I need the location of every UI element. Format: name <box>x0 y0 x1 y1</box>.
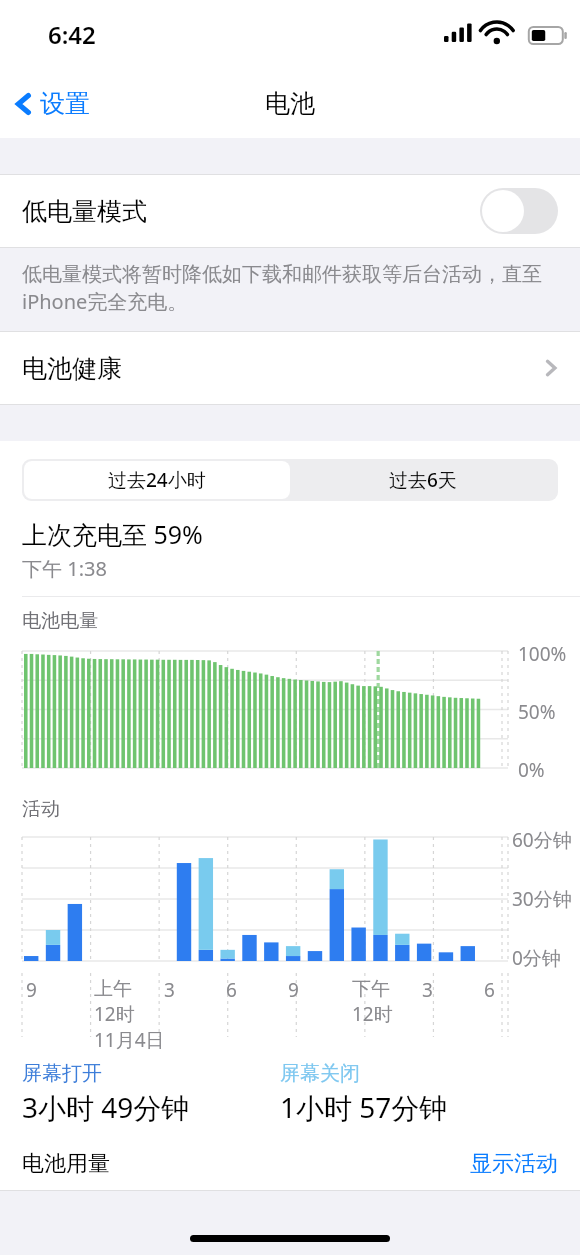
staticText: 电池用量 <box>22 1150 110 1178</box>
button[interactable]: 低电量模式开关 <box>480 188 558 234</box>
staticText: 活动 <box>22 797 60 821</box>
staticText: 0% <box>518 757 545 783</box>
staticText: 上次充电至 59% <box>22 517 203 551</box>
staticText: 3小时 49分钟 <box>22 1088 190 1126</box>
button[interactable]: 设置 <box>0 82 100 125</box>
staticText: 50% <box>518 699 556 725</box>
staticText: 6:42 <box>48 18 96 51</box>
button[interactable]: 过去6天 <box>290 461 556 499</box>
button[interactable]: 过去24小时 <box>24 461 290 499</box>
staticText: 设置 <box>40 88 90 119</box>
button[interactable]: 显示活动 <box>470 1150 558 1178</box>
staticText: 11月4日 <box>94 1027 165 1053</box>
staticText: 电池 <box>265 88 315 119</box>
staticText: 屏幕关闭 <box>280 1061 360 1086</box>
staticText: 显示活动 <box>470 1150 558 1178</box>
staticText: 1小时 57分钟 <box>280 1088 448 1126</box>
staticText: 低电量模式 <box>22 196 147 227</box>
staticText: 60分钟 <box>512 827 572 853</box>
staticText: 6 <box>484 977 495 1003</box>
staticText: 30分钟 <box>512 886 572 912</box>
button[interactable]: 低电量模式 <box>0 175 580 247</box>
staticText: 9 <box>288 977 299 1003</box>
staticText: 100% <box>518 641 567 667</box>
staticText: 屏幕打开 <box>22 1061 102 1086</box>
staticText: 0分钟 <box>512 945 561 971</box>
staticText: 9 <box>26 977 37 1003</box>
staticText: 低电量模式将暂时降低如下载和邮件获取等后台活动，直至 iPhone完全充电。 <box>22 262 542 315</box>
staticText: 12时 <box>352 1001 393 1027</box>
staticText: 6 <box>226 977 237 1003</box>
staticText: 12时 <box>94 1001 135 1027</box>
staticText: 过去6天 <box>389 467 457 493</box>
staticText: 电池电量 <box>22 609 98 633</box>
button[interactable]: 电池健康 <box>0 332 580 404</box>
staticText: 上午 <box>94 977 132 1001</box>
staticText: 电池健康 <box>22 353 122 384</box>
staticText: 下午 <box>352 977 390 1001</box>
staticText: 3 <box>422 977 433 1003</box>
staticText: 下午 1:38 <box>22 555 107 582</box>
staticText: 3 <box>164 977 175 1003</box>
staticText: 过去24小时 <box>108 467 206 493</box>
